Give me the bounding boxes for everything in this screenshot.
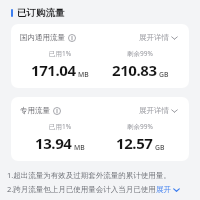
staticText: GB — [155, 143, 165, 152]
staticText: 剩余99% — [127, 122, 153, 131]
other: 流量说明 — [68, 34, 76, 42]
staticText: 国内通用流量 — [20, 33, 65, 42]
button[interactable]: 专用流量 — [11, 97, 189, 161]
button[interactable]: 国内通用流量 — [11, 24, 189, 88]
staticText: 已用1% — [49, 49, 72, 58]
staticText: 210.83 — [112, 60, 157, 80]
staticText: 展开详情 — [139, 106, 169, 115]
staticText: 2.跨月流量包上月已使用量会计入当月已使用 — [7, 184, 156, 194]
staticText: 剩余99% — [127, 49, 153, 58]
staticText: 已用1% — [49, 122, 72, 131]
staticText: 1.超出流量为有效及过期套外流量的累计使用量。 — [7, 170, 171, 180]
staticText: 已订购流量 — [17, 7, 65, 19]
button[interactable]: 展开详情 — [137, 31, 180, 44]
staticText: 13.94 — [35, 133, 72, 153]
staticText: GB — [159, 70, 169, 79]
staticText: 171.04 — [31, 60, 76, 80]
button[interactable]: 展开详情 — [137, 104, 180, 117]
other: 流量说明 — [53, 107, 61, 115]
staticText: 展开 — [156, 185, 171, 194]
staticText: 展开详情 — [139, 33, 169, 42]
staticText: MB — [74, 143, 85, 152]
staticText: MB — [78, 70, 89, 79]
staticText: 专用流量 — [20, 106, 50, 115]
staticText: 12.57 — [116, 133, 153, 153]
button[interactable]: 展开 — [156, 185, 180, 194]
